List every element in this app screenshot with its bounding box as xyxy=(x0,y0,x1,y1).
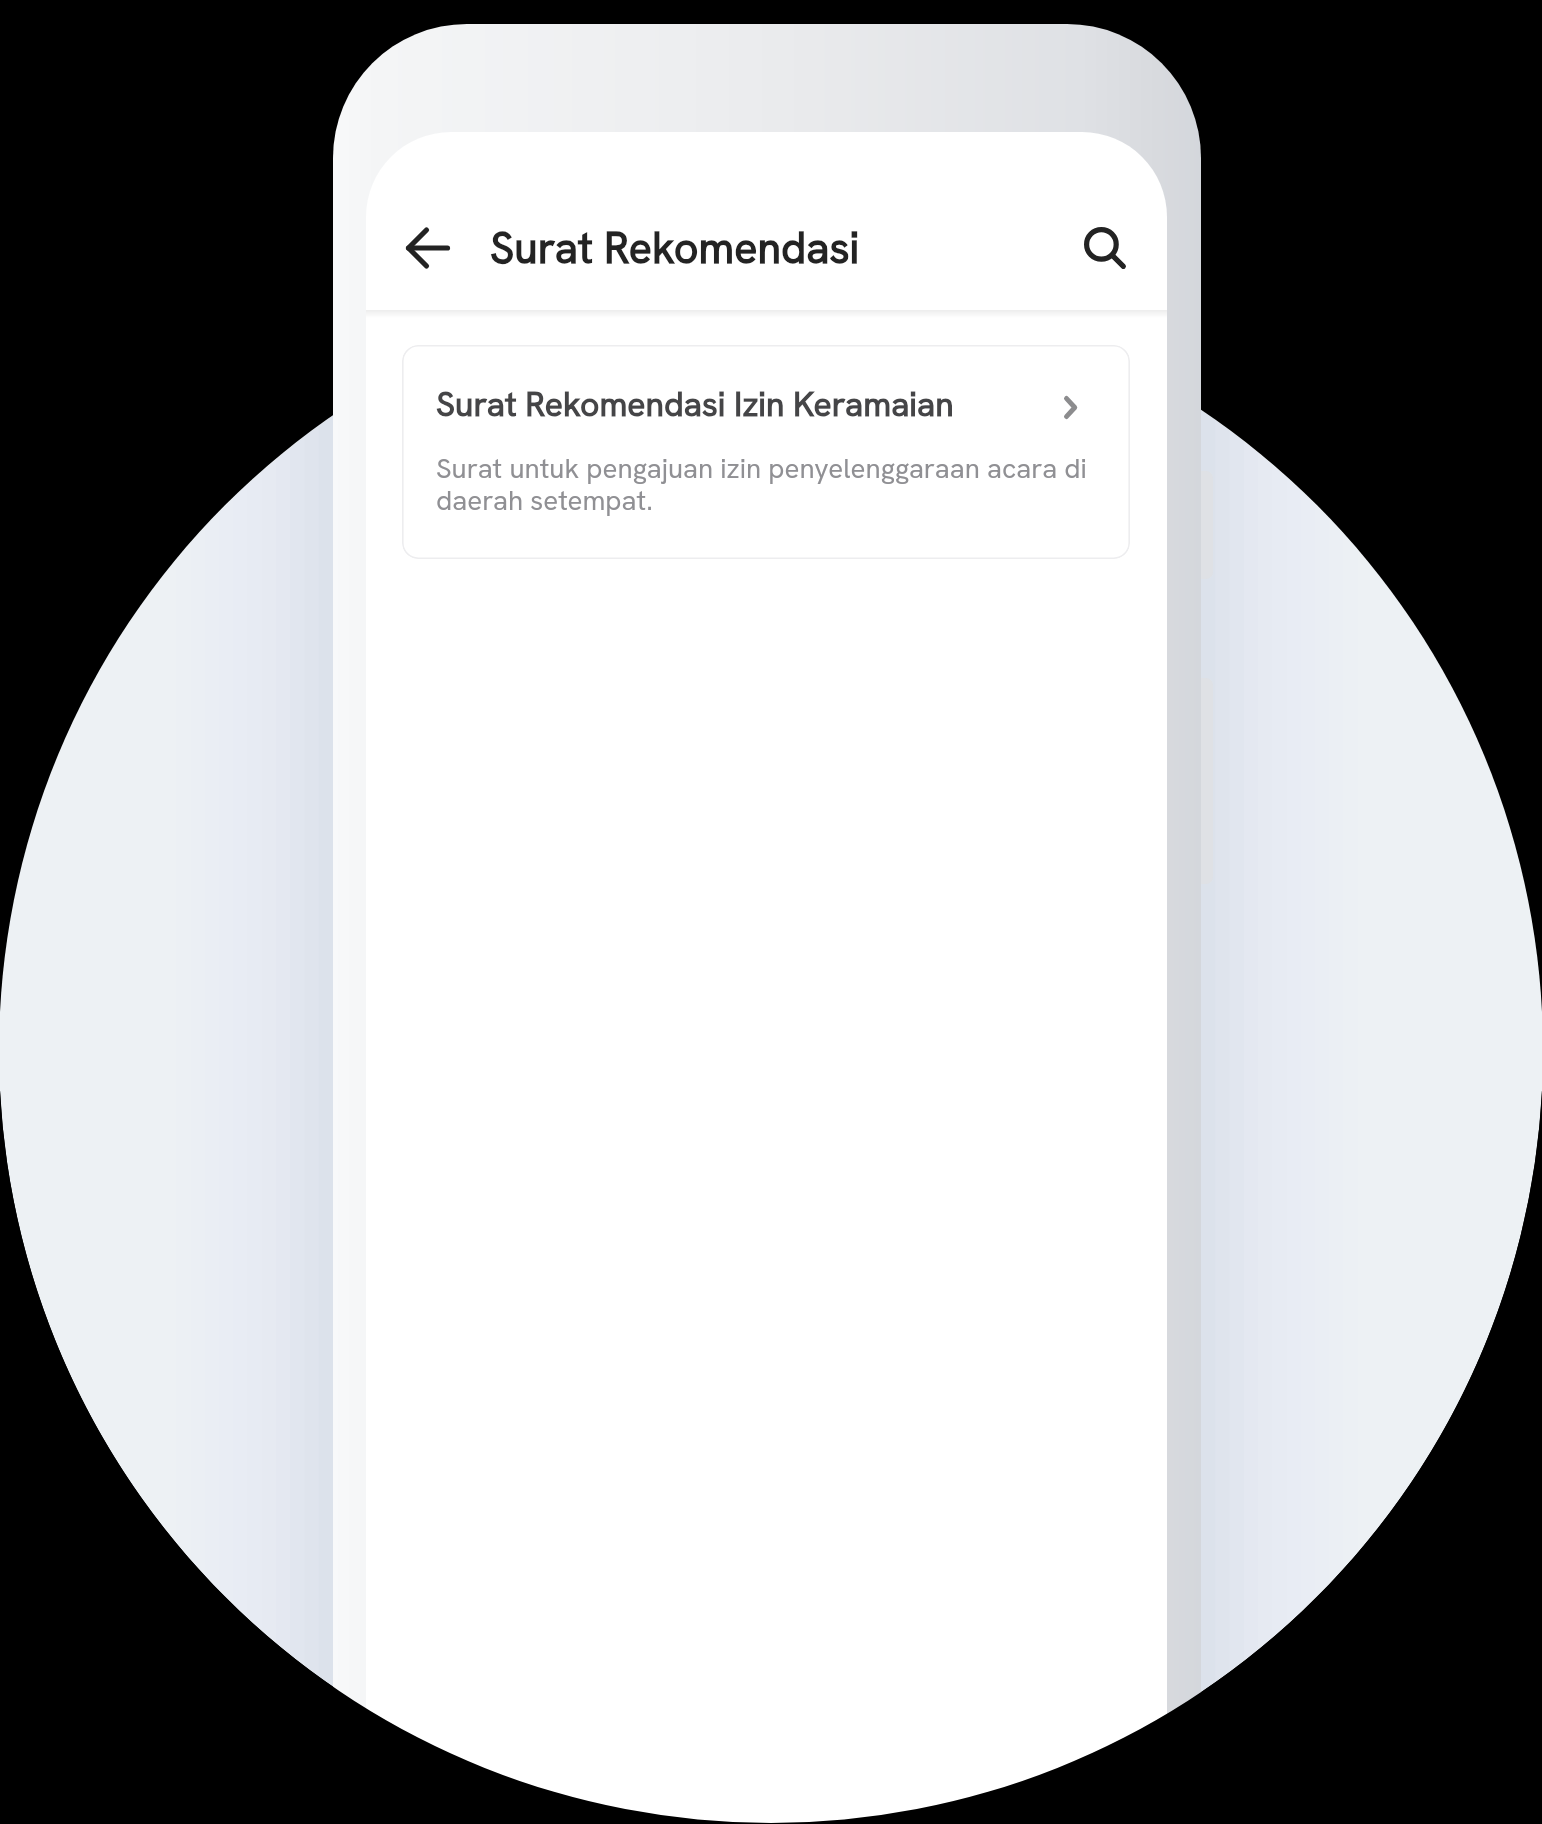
button[interactable]: Surat Rekomendasi Izin Keramaian xyxy=(402,345,1130,559)
staticText: Surat Rekomendasi Izin Keramaian xyxy=(436,382,954,426)
button[interactable]: Search xyxy=(1069,212,1139,282)
staticText: Surat untuk pengajuan izin penyelenggara… xyxy=(436,450,1108,519)
button[interactable]: Back xyxy=(394,214,462,282)
staticText: Surat Rekomendasi xyxy=(490,220,860,276)
